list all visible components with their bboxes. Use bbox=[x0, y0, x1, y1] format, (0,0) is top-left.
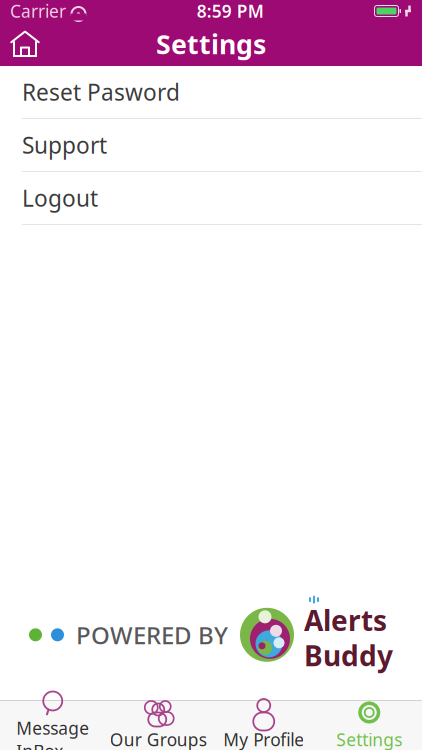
button[interactable]: My Profile bbox=[211, 696, 316, 750]
staticText: Logout bbox=[22, 183, 98, 213]
staticText: Reset Pasword bbox=[22, 77, 180, 107]
button[interactable]: Home bbox=[0, 23, 50, 65]
button[interactable]: Settings bbox=[316, 696, 422, 750]
staticText: My Profile bbox=[223, 728, 304, 750]
staticText: Settings bbox=[156, 26, 266, 62]
staticText: Message InBox bbox=[16, 716, 89, 750]
staticText: Buddy bbox=[304, 637, 393, 674]
staticText: Alerts bbox=[304, 602, 387, 639]
staticText: POWERED BY bbox=[76, 619, 228, 651]
staticText: Carrier bbox=[10, 0, 66, 22]
button[interactable]: Logout bbox=[0, 172, 422, 225]
staticText: Support bbox=[22, 130, 107, 160]
staticText: Settings bbox=[336, 728, 402, 750]
staticText: Our Groups bbox=[110, 728, 207, 750]
button[interactable]: Support bbox=[0, 119, 422, 172]
button[interactable]: Our Groups bbox=[105, 696, 211, 750]
staticText: 8:59 PM bbox=[197, 0, 264, 22]
button[interactable]: Message InBox bbox=[0, 684, 105, 750]
button[interactable]: Reset Pasword bbox=[0, 66, 422, 119]
